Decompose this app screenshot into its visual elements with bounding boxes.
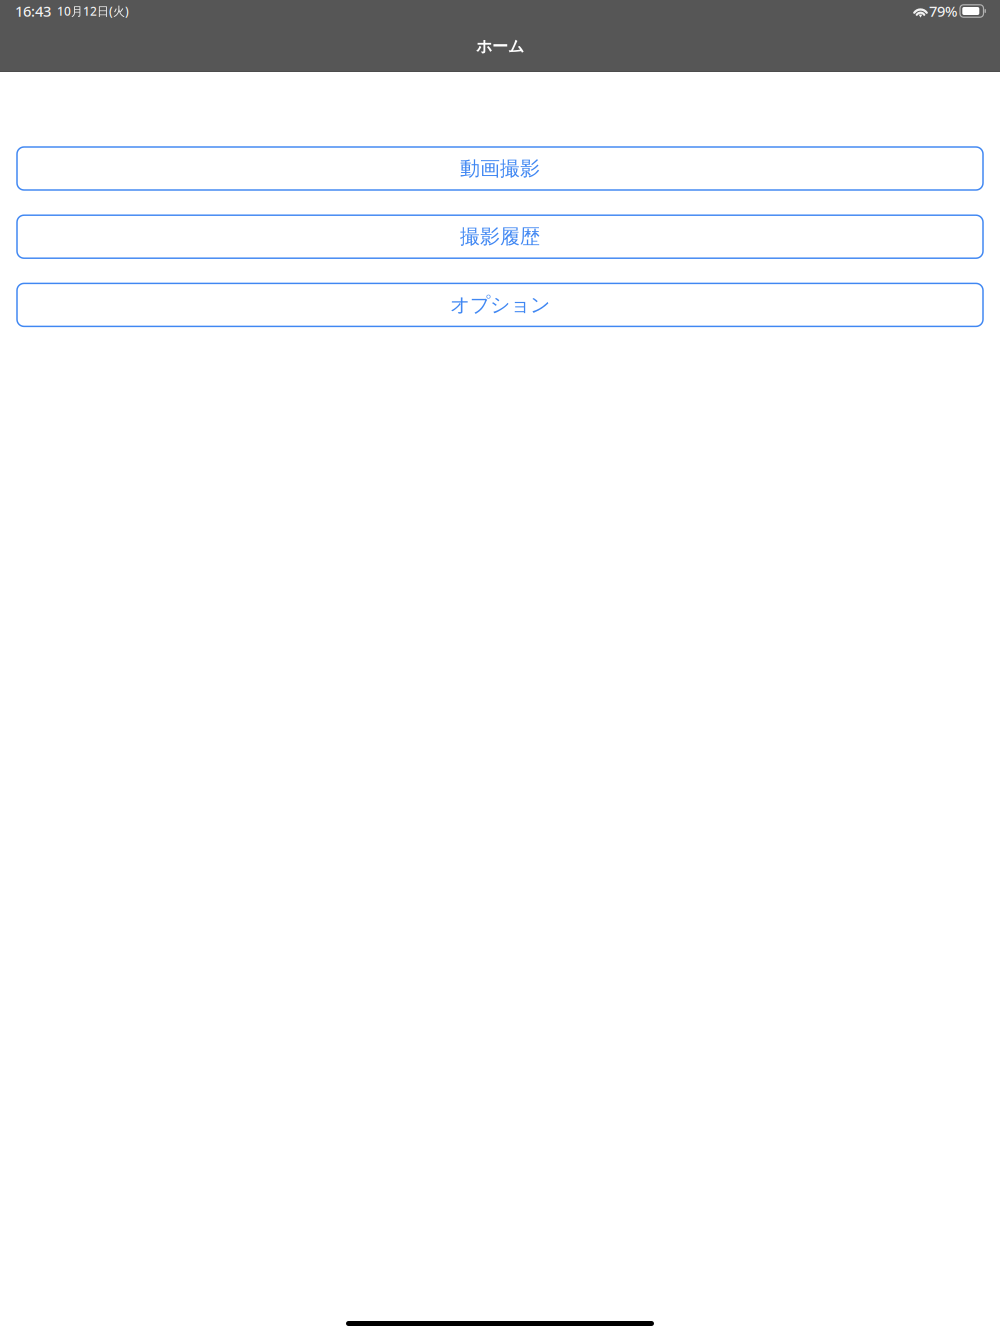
staticText: 10月12日(火) [57, 3, 129, 19]
staticText: 16:43 [15, 1, 51, 21]
staticText: 撮影履歴 [460, 224, 540, 249]
staticText: オプション [450, 293, 550, 317]
staticText: ホーム [476, 37, 524, 56]
button[interactable]: 撮影履歴 [17, 215, 983, 258]
staticText: 79% [929, 1, 957, 21]
staticText: 動画撮影 [460, 156, 540, 181]
button[interactable]: オプション [17, 283, 983, 326]
button[interactable]: 動画撮影 [17, 147, 983, 190]
